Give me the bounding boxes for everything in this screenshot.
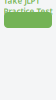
staticText: Take JLPT Practice Test <box>3 0 52 17</box>
